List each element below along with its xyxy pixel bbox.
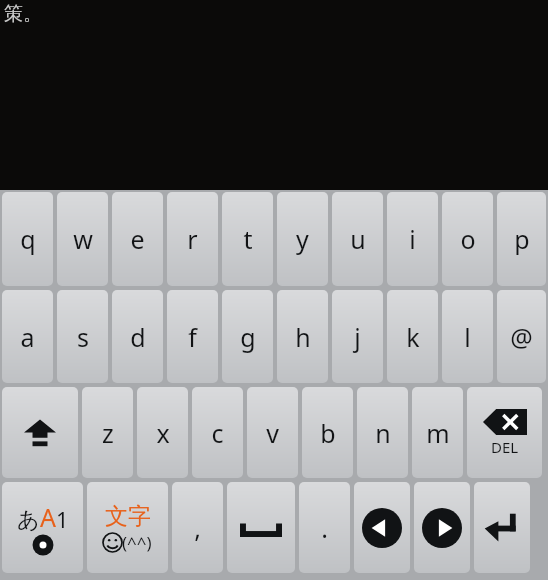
staticText: 文字 xyxy=(105,502,151,531)
button[interactable]: i xyxy=(387,192,438,286)
staticText: e xyxy=(130,222,145,256)
staticText: g xyxy=(240,320,256,354)
button[interactable]: s xyxy=(57,290,108,383)
staticText: A xyxy=(40,500,56,534)
button[interactable]: q xyxy=(2,192,53,286)
button[interactable]: c xyxy=(192,387,243,478)
button[interactable]: Input mode xyxy=(2,482,83,573)
button[interactable]: g xyxy=(222,290,273,383)
staticText: i xyxy=(409,222,416,256)
staticText: h xyxy=(295,320,311,354)
button[interactable]: o xyxy=(442,192,493,286)
staticText: z xyxy=(102,416,114,450)
button[interactable]: r xyxy=(167,192,218,286)
staticText: p xyxy=(514,222,530,256)
button[interactable]: e xyxy=(112,192,163,286)
button[interactable]: f xyxy=(167,290,218,383)
staticText: f xyxy=(188,320,197,354)
button[interactable]: a xyxy=(2,290,53,383)
button[interactable]: p xyxy=(497,192,546,286)
button[interactable]: Character xyxy=(87,482,168,573)
button[interactable]: w xyxy=(57,192,108,286)
staticText: l xyxy=(464,320,471,354)
button[interactable]: d xyxy=(112,290,163,383)
staticText: y xyxy=(296,222,309,256)
staticText: 1 xyxy=(56,504,69,534)
staticText: r xyxy=(187,222,198,256)
staticText: d xyxy=(130,320,146,354)
button[interactable]: , xyxy=(172,482,223,573)
staticText: @ xyxy=(510,320,533,354)
staticText: m xyxy=(426,416,450,450)
staticText: t xyxy=(243,222,253,256)
button[interactable]: Left xyxy=(354,482,410,573)
button[interactable]: j xyxy=(332,290,383,383)
button[interactable]: k xyxy=(387,290,438,383)
staticText: w xyxy=(73,222,93,256)
button[interactable]: Right xyxy=(414,482,470,573)
button[interactable]: y xyxy=(277,192,328,286)
staticText: (^^) xyxy=(122,531,152,554)
staticText: k xyxy=(406,320,420,354)
staticText: a xyxy=(20,320,35,354)
button[interactable]: @ xyxy=(497,290,546,383)
staticText: n xyxy=(375,416,391,450)
button[interactable]: m xyxy=(412,387,463,478)
staticText: j xyxy=(354,320,361,354)
button[interactable]: t xyxy=(222,192,273,286)
button[interactable]: l xyxy=(442,290,493,383)
button[interactable]: h xyxy=(277,290,328,383)
button[interactable]: Delete xyxy=(467,387,542,478)
staticText: あ xyxy=(17,506,40,534)
button[interactable]: b xyxy=(302,387,353,478)
staticText: b xyxy=(320,416,336,450)
staticText: c xyxy=(211,416,224,450)
staticText: u xyxy=(350,222,366,256)
staticText: , xyxy=(194,511,201,545)
staticText: v xyxy=(266,416,279,450)
button[interactable]: u xyxy=(332,192,383,286)
button[interactable]: Enter xyxy=(474,482,530,573)
staticText: . xyxy=(321,511,328,545)
staticText: q xyxy=(20,222,36,256)
staticText: o xyxy=(460,222,476,256)
button[interactable]: n xyxy=(357,387,408,478)
button[interactable]: Space xyxy=(227,482,295,573)
button[interactable]: Shift xyxy=(2,387,78,478)
staticText: 策。 xyxy=(4,2,42,26)
staticText: DEL xyxy=(491,437,519,457)
staticText: s xyxy=(77,320,89,354)
button[interactable]: . xyxy=(299,482,350,573)
button[interactable]: z xyxy=(82,387,133,478)
button[interactable]: v xyxy=(247,387,298,478)
staticText: x xyxy=(156,416,170,450)
button[interactable]: x xyxy=(137,387,188,478)
